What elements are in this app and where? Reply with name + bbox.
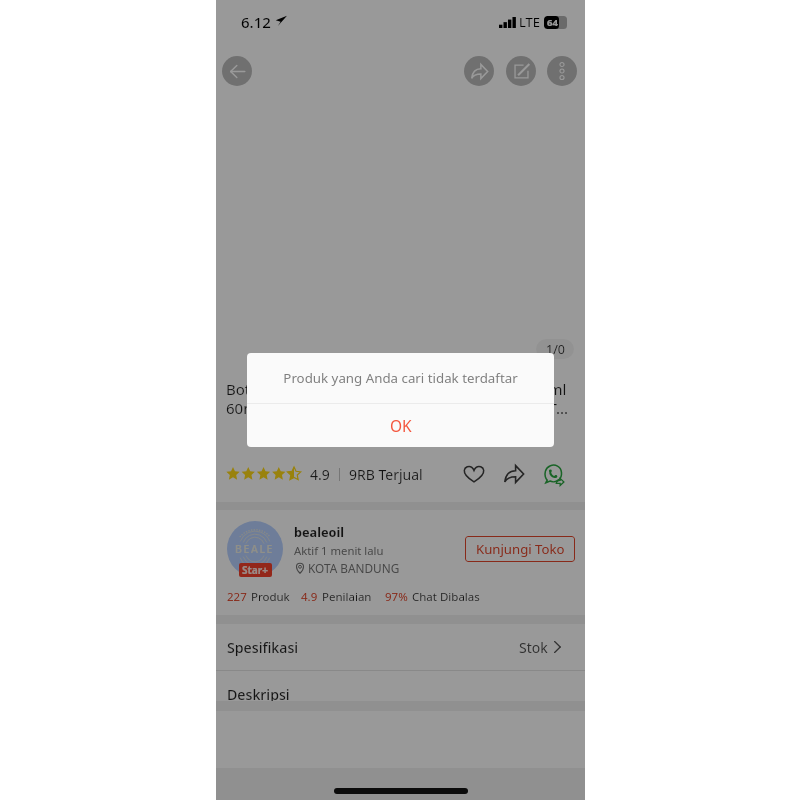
staticText: Deskripsi: [227, 685, 290, 701]
staticText: 9RB Terjual: [349, 465, 423, 484]
staticText: BEALE: [235, 542, 275, 556]
button[interactable]: Deskripsi: [216, 671, 585, 701]
staticText: Kunjungi Toko: [476, 540, 565, 558]
staticText: 97%: [385, 589, 408, 605]
staticText: KOTA BANDUNG: [308, 560, 400, 576]
button[interactable]: Favorite: [460, 460, 488, 488]
staticText: OK: [390, 415, 412, 436]
button[interactable]: Spesifikasi: [216, 624, 585, 670]
button[interactable]: Back: [222, 56, 252, 86]
staticText: 6.12: [241, 12, 271, 32]
staticText: Botol Kaca Amber Tutup Pipet Dropper Bot…: [226, 379, 568, 418]
button[interactable]: Share: [464, 56, 494, 86]
staticText: Aktif 1 menit lalu: [294, 543, 384, 558]
staticText: Chat Dibalas: [412, 589, 480, 605]
staticText: 4.9: [301, 589, 318, 605]
staticText: Produk yang Anda cari tidak terdaftar: [283, 369, 518, 387]
staticText: 64: [547, 16, 558, 29]
staticText: 4.9: [310, 465, 330, 484]
staticText: LTE: [519, 13, 541, 31]
staticText: bealeoil: [294, 523, 345, 540]
button[interactable]: Kunjungi Toko: [465, 536, 575, 562]
button[interactable]: Edit review: [506, 56, 536, 86]
staticText: 1/0: [546, 341, 565, 358]
button[interactable]: More options: [547, 56, 577, 86]
staticText: Star+: [242, 563, 269, 577]
staticText: Stok: [519, 638, 548, 657]
staticText: Penilaian: [322, 589, 372, 605]
staticText: 227: [227, 589, 247, 605]
button[interactable]: Chat on WhatsApp: [540, 460, 568, 488]
button[interactable]: OK: [247, 404, 554, 447]
button[interactable]: Share: [500, 460, 528, 488]
staticText: Spesifikasi: [227, 638, 299, 657]
staticText: Produk: [251, 589, 290, 605]
